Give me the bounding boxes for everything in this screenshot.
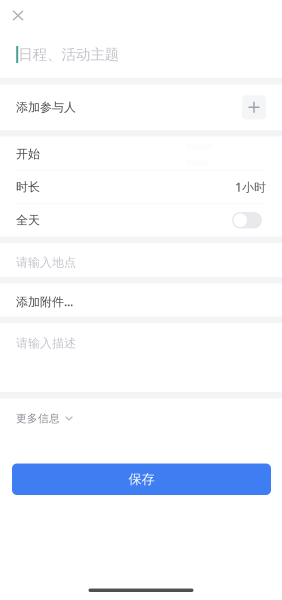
staticText: 更多信息 xyxy=(16,412,60,425)
button[interactable]: 添加附件... xyxy=(0,283,282,316)
button[interactable]: 更多信息 xyxy=(0,398,282,435)
button[interactable]: 时长 xyxy=(0,171,282,203)
staticText: 添加参与人 xyxy=(16,100,76,115)
staticText: 全天 xyxy=(16,213,40,228)
button[interactable]: 请输入地点 xyxy=(0,243,282,277)
staticText: 保存 xyxy=(128,471,154,487)
button[interactable]: 添加参与人 xyxy=(0,84,282,130)
button[interactable]: 开始 xyxy=(0,136,282,170)
staticText: 时长 xyxy=(16,180,40,194)
button[interactable]: 请输入描述 xyxy=(0,323,92,392)
staticText: 开始 xyxy=(16,147,40,161)
button[interactable]: 保存 xyxy=(12,463,271,495)
button[interactable]: 全天 xyxy=(0,204,282,236)
staticText: 日程、活动主题 xyxy=(18,45,120,63)
staticText: 添加附件... xyxy=(16,293,73,309)
staticText: 1小时 xyxy=(235,179,266,195)
staticText: 请输入地点 xyxy=(16,255,76,270)
button[interactable]: Close xyxy=(0,0,282,31)
staticText: 请输入描述 xyxy=(16,336,76,351)
